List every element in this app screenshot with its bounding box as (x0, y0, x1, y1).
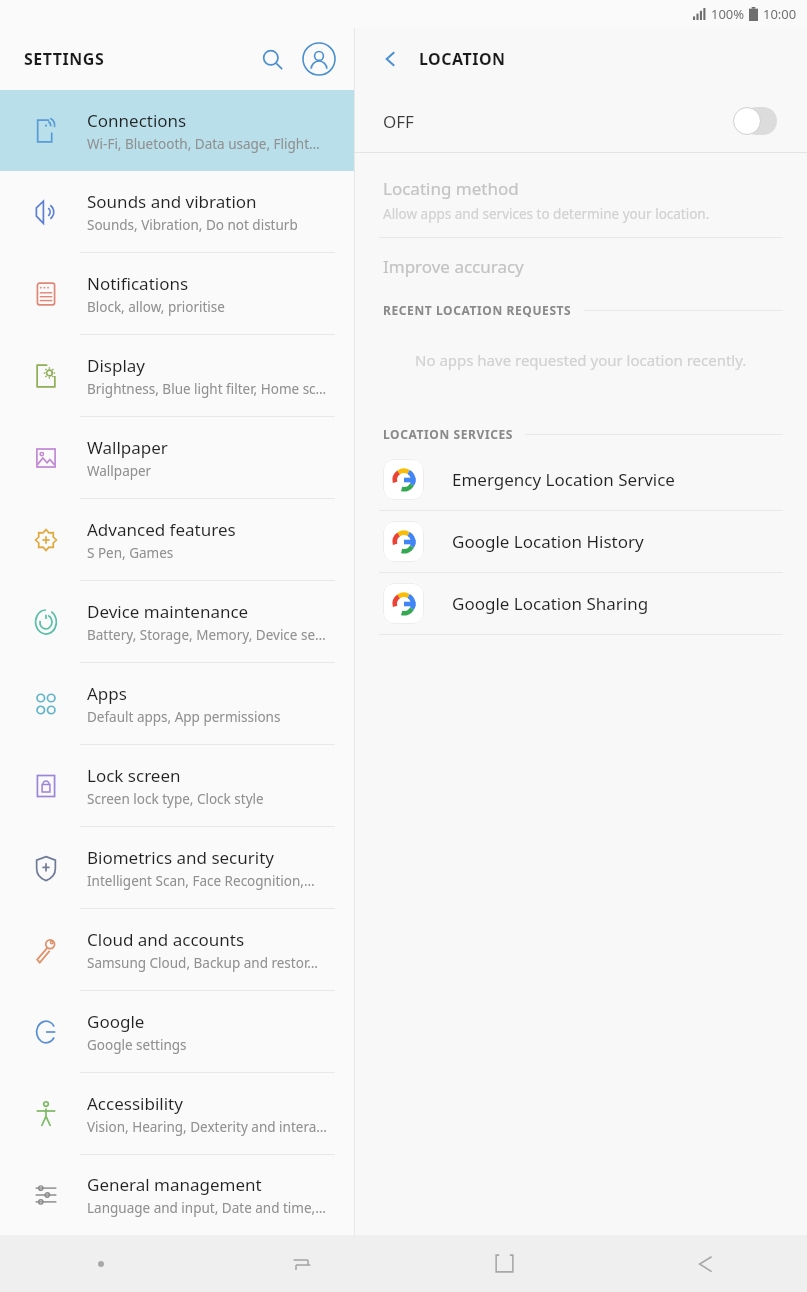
staticText: 10:00 (763, 5, 797, 23)
staticText: Connections (87, 109, 187, 132)
staticText: LOCATION (419, 48, 506, 70)
button[interactable]: Multi window (201, 1235, 403, 1292)
staticText: Google Location History (452, 530, 644, 553)
button[interactable]: Menu indicator (0, 1235, 201, 1292)
button[interactable]: Google (0, 991, 354, 1072)
button[interactable]: Accessibility (0, 1073, 354, 1154)
staticText: Advanced features (87, 518, 236, 541)
button[interactable]: Account (298, 38, 340, 80)
staticText: Google Location Sharing (452, 592, 649, 615)
staticText: Lock screen (87, 764, 181, 787)
staticText: Samsung Cloud, Backup and restor… (87, 954, 318, 972)
button[interactable]: Cloud and accounts (0, 909, 354, 990)
staticText: Screen lock type, Clock style (87, 790, 264, 808)
button[interactable]: Back (605, 1235, 807, 1292)
staticText: Default apps, App permissions (87, 708, 281, 726)
button[interactable]: Sounds and vibration (0, 171, 354, 252)
staticText: Biometrics and security (87, 846, 274, 869)
staticText: OFF (383, 110, 414, 133)
button[interactable]: Back (371, 39, 411, 79)
button[interactable]: Home (403, 1235, 605, 1292)
staticText: Allow apps and services to determine you… (383, 205, 710, 223)
staticText: No apps have requested your location rec… (415, 350, 747, 370)
staticText: Language and input, Date and time,… (87, 1199, 326, 1217)
staticText: Sounds, Vibration, Do not disturb (87, 216, 298, 234)
staticText: SETTINGS (24, 48, 105, 70)
button[interactable]: Google Location History (355, 511, 807, 572)
button[interactable]: Search (252, 39, 292, 79)
button[interactable]: Apps (0, 663, 354, 744)
staticText: RECENT LOCATION REQUESTS (383, 302, 572, 318)
button[interactable]: Advanced features (0, 499, 354, 580)
staticText: Emergency Location Service (452, 468, 675, 491)
button[interactable]: Lock screen (0, 745, 354, 826)
button[interactable]: Locating method (355, 165, 807, 237)
button[interactable]: Emergency Location Service (355, 449, 807, 510)
staticText: Google settings (87, 1036, 187, 1054)
staticText: Wi-Fi, Bluetooth, Data usage, Flight… (87, 135, 320, 153)
staticText: Device maintenance (87, 600, 249, 623)
staticText: Notifications (87, 272, 189, 295)
button[interactable]: Connections (0, 90, 354, 171)
staticText: Apps (87, 682, 127, 705)
staticText: Brightness, Blue light filter, Home sc… (87, 380, 327, 398)
button[interactable]: Notifications (0, 253, 354, 334)
staticText: Accessibility (87, 1092, 183, 1115)
staticText: Intelligent Scan, Face Recognition,… (87, 872, 315, 890)
staticText: S Pen, Games (87, 544, 174, 562)
button[interactable]: General management (0, 1155, 354, 1235)
staticText: 100% (711, 5, 745, 23)
staticText: Vision, Hearing, Dexterity and intera… (87, 1118, 327, 1136)
button[interactable]: Google Location Sharing (355, 573, 807, 634)
staticText: Wallpaper (87, 462, 152, 480)
staticText: General management (87, 1173, 262, 1196)
staticText: Wallpaper (87, 436, 168, 459)
button[interactable]: Improve accuracy (355, 238, 807, 295)
staticText: Google (87, 1010, 145, 1033)
button[interactable]: Biometrics and security (0, 827, 354, 908)
staticText: Battery, Storage, Memory, Device se… (87, 626, 326, 644)
staticText: Display (87, 354, 145, 377)
button[interactable]: Wallpaper (0, 417, 354, 498)
button[interactable]: Device maintenance (0, 581, 354, 662)
staticText: Improve accuracy (383, 255, 524, 278)
button[interactable]: OFF (355, 90, 807, 152)
button[interactable]: Display (0, 335, 354, 416)
staticText: LOCATION SERVICES (383, 426, 513, 442)
staticText: Sounds and vibration (87, 190, 257, 213)
staticText: Cloud and accounts (87, 928, 245, 951)
staticText: Block, allow, prioritise (87, 298, 225, 316)
staticText: Locating method (383, 177, 519, 200)
